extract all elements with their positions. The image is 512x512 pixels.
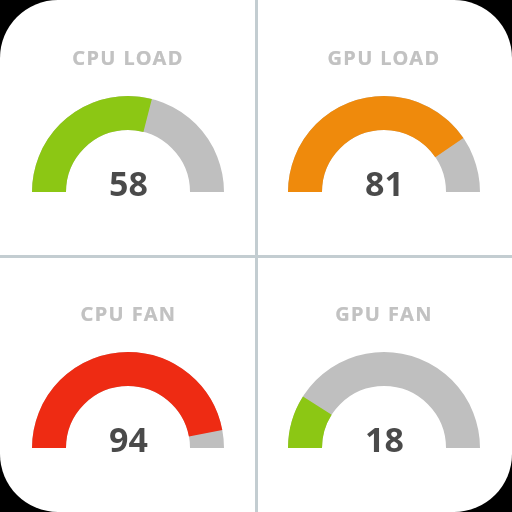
button[interactable]: GPU LOAD 81 — [256, 0, 512, 256]
button[interactable]: GPU FAN 18 — [256, 256, 512, 512]
staticText: CPU LOAD — [72, 44, 184, 71]
staticText: 81 — [365, 160, 404, 206]
button[interactable]: CPU LOAD 58 — [0, 0, 256, 256]
staticText: 94 — [109, 416, 148, 462]
staticText: 58 — [109, 160, 148, 206]
staticText: 18 — [365, 416, 404, 462]
staticText: GPU LOAD — [327, 44, 441, 71]
button[interactable]: CPU FAN 94 — [0, 256, 256, 512]
staticText: CPU FAN — [80, 300, 177, 327]
staticText: GPU FAN — [335, 300, 433, 327]
